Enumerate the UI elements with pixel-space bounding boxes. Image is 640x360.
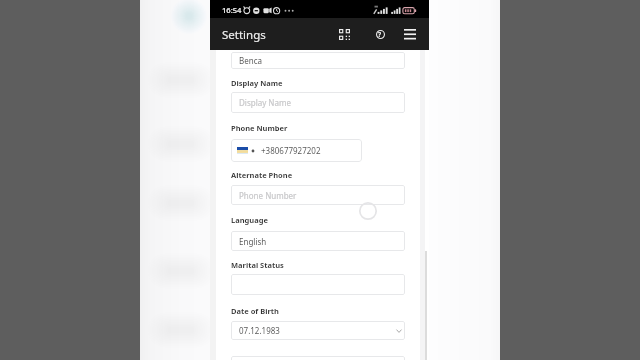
button[interactable] — [231, 356, 405, 360]
button[interactable]: Help — [368, 22, 392, 46]
staticText: ? — [378, 30, 382, 39]
button[interactable]: Phone Number — [231, 185, 405, 205]
staticText: 16:54 — [222, 5, 242, 15]
staticText: +380677927202 — [261, 145, 321, 156]
staticText: 07.12.1983 — [239, 325, 280, 336]
staticText: English — [239, 236, 267, 247]
staticText: Phone Number — [231, 123, 288, 133]
button[interactable]: English — [231, 231, 405, 251]
staticText: Display Name — [239, 97, 291, 108]
staticText: Display Name — [231, 78, 283, 88]
button[interactable]: Scan code — [332, 22, 356, 46]
button[interactable]: +380677927202 — [231, 139, 362, 162]
button[interactable] — [231, 274, 405, 295]
button[interactable]: Display Name — [231, 92, 405, 113]
staticText: Alternate Phone — [231, 170, 293, 180]
staticText: Settings — [222, 27, 266, 43]
staticText: Phone Number — [239, 190, 297, 201]
staticText: Language — [231, 215, 268, 225]
staticText: Benca — [239, 55, 262, 66]
button[interactable]: Menu — [398, 22, 422, 46]
button[interactable]: 07.12.1983 — [231, 321, 405, 340]
staticText: Marital Status — [231, 260, 284, 270]
staticText: Date of Birth — [231, 306, 279, 316]
button[interactable]: Benca — [231, 52, 405, 69]
